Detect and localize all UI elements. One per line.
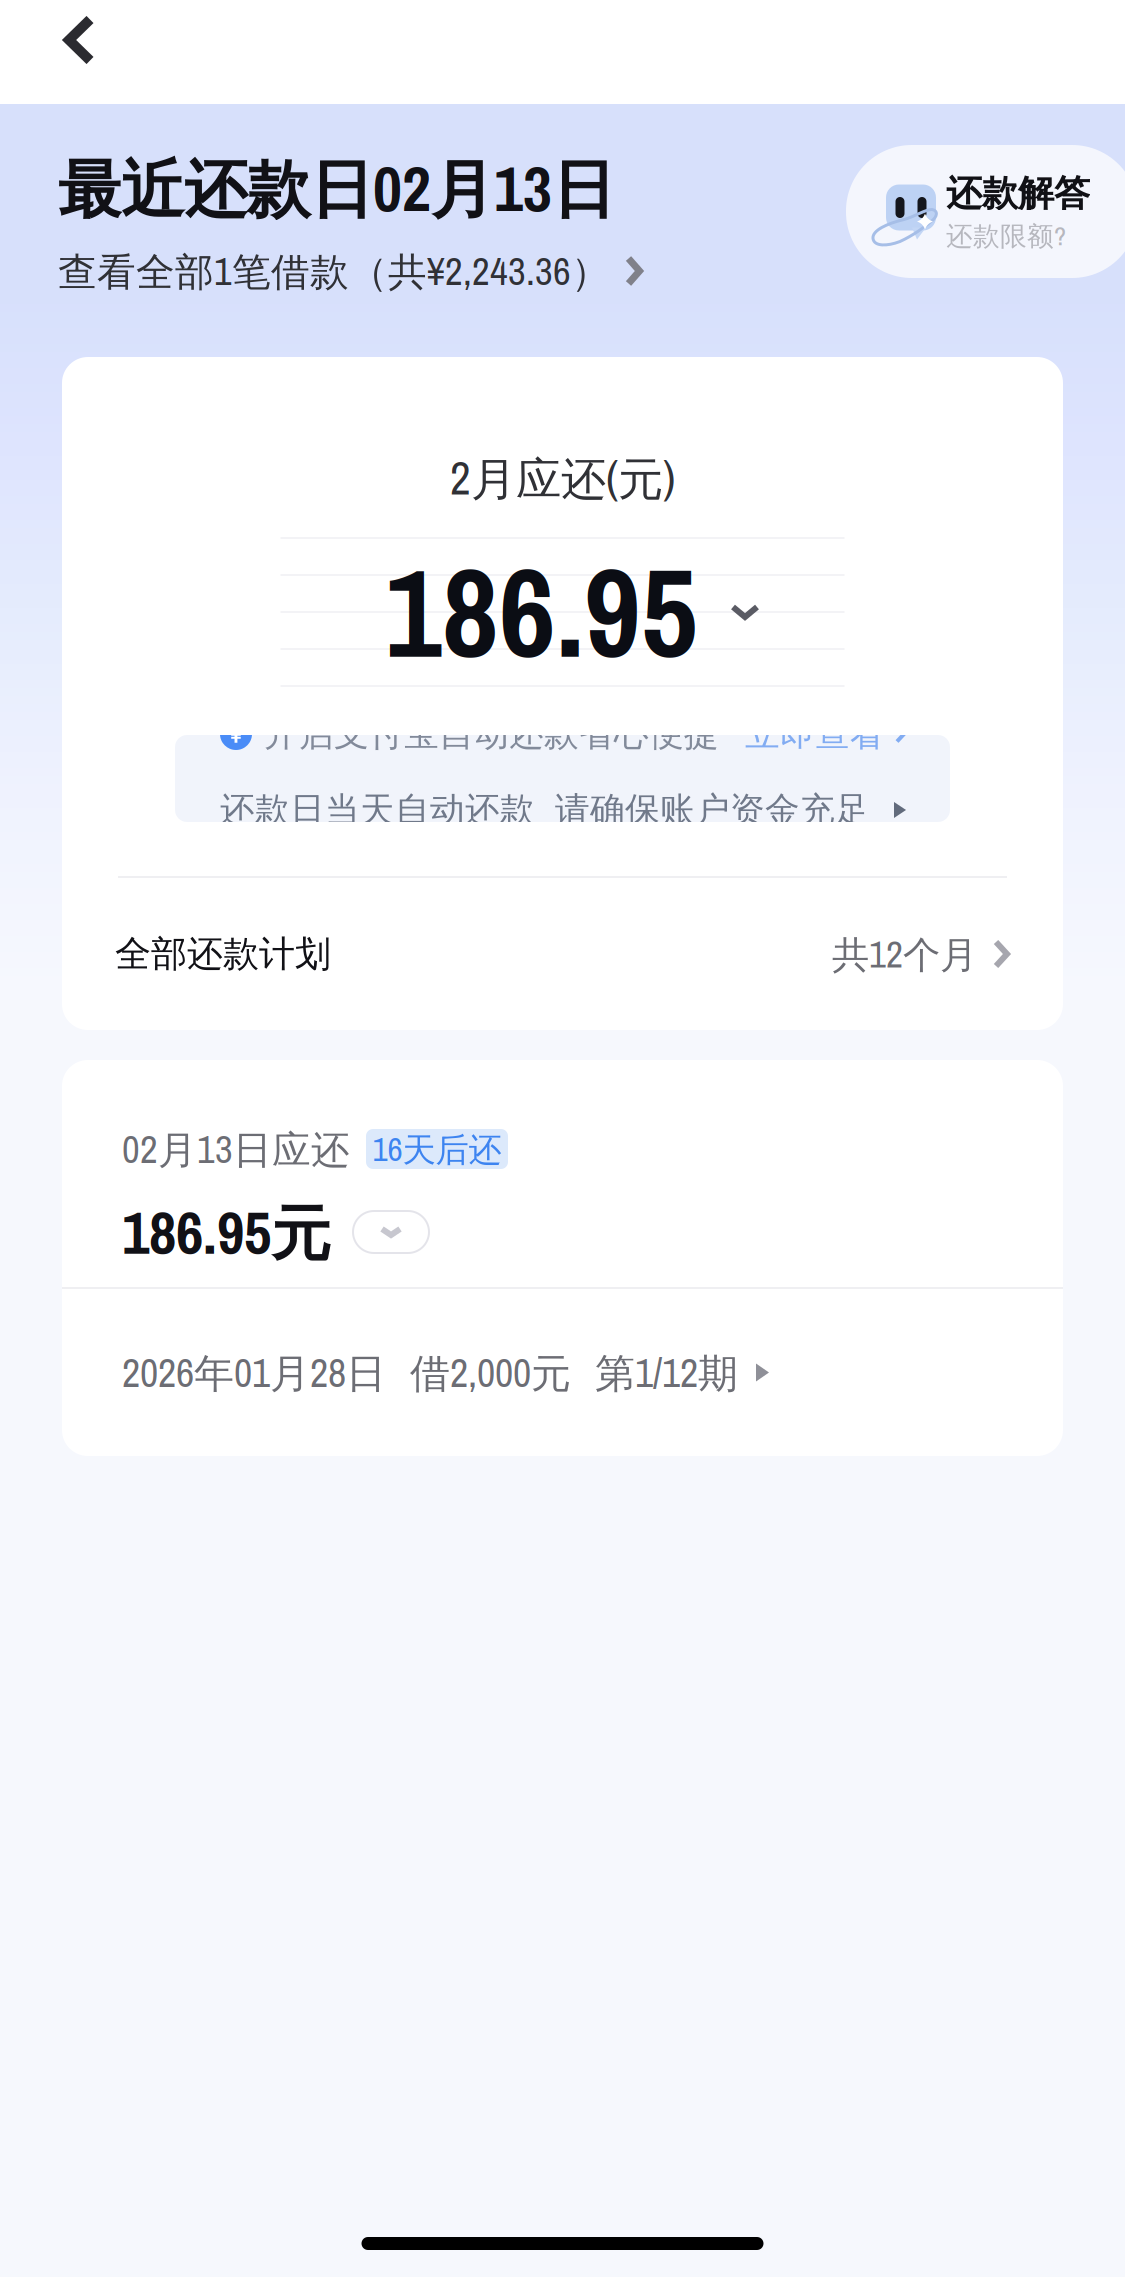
button[interactable]: 2026年01月28日 借2,000元 第1/12期: [62, 1289, 1063, 1456]
staticText: 还款解答: [946, 171, 1090, 216]
button[interactable]: 查看全部1笔借款（共¥2,243.36）: [58, 248, 1125, 294]
staticText: 186.95元: [122, 1192, 331, 1272]
staticText: 最近还款日02月13日: [58, 145, 615, 231]
staticText: 02月13日应还: [122, 1123, 350, 1175]
staticText: 16天后还: [372, 1127, 501, 1171]
staticText: 全部还款计划: [115, 931, 331, 977]
staticText: 2月应还(元): [450, 447, 675, 509]
staticText: 186.95: [385, 528, 698, 695]
staticText: 还款日当天自动还款 请确保账户资金充足: [220, 788, 870, 832]
staticText: ¥: [230, 718, 241, 750]
staticText: 开启支付宝自动还款省心便捷: [264, 712, 719, 756]
staticText: 2026年01月28日 借2,000元 第1/12期: [122, 1346, 738, 1399]
button[interactable]: 返回: [0, 10, 123, 94]
button[interactable]: 全部还款计划: [62, 878, 1063, 1030]
staticText: 查看全部1笔借款（共¥2,243.36）: [58, 245, 610, 297]
staticText: 还款限额?: [946, 217, 1066, 253]
staticText: 共12个月: [832, 929, 977, 979]
staticText: 立即查看: [745, 712, 885, 756]
button[interactable]: 展开还款明细: [353, 1211, 429, 1253]
button[interactable]: 还款解答: [846, 145, 1125, 278]
